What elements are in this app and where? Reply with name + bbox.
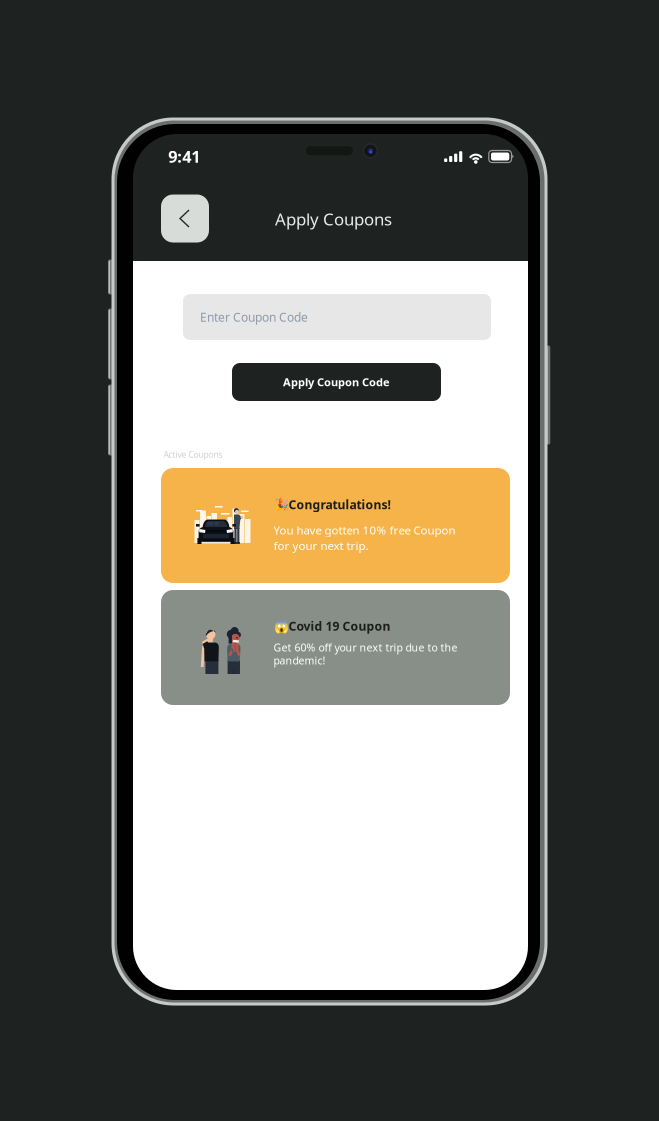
staticText: 😱Covid 19 Coupon bbox=[273, 618, 390, 634]
button[interactable]: 😱Covid 19 Coupon bbox=[161, 590, 510, 705]
staticText: pandemic! bbox=[273, 653, 325, 668]
staticText: Enter Coupon Code bbox=[200, 309, 308, 325]
staticText: Active Coupons bbox=[163, 449, 222, 460]
button[interactable]: Apply Coupon Code bbox=[232, 363, 441, 401]
staticText: You have gotten 10% free Coupon bbox=[273, 522, 455, 538]
staticText: Apply Coupons bbox=[275, 208, 392, 230]
staticText: Get 60% off your next trip due to the bbox=[273, 640, 457, 655]
staticText: 🎉Congratulations! bbox=[273, 496, 390, 513]
staticText: 9:41 bbox=[168, 145, 200, 168]
button[interactable]: 🎉Congratulations! bbox=[161, 468, 510, 583]
button[interactable]: Enter Coupon Code bbox=[183, 294, 491, 340]
staticText: Apply Coupon Code bbox=[283, 374, 390, 390]
staticText: for your next trip. bbox=[273, 538, 368, 553]
button[interactable]: Back bbox=[161, 194, 209, 242]
